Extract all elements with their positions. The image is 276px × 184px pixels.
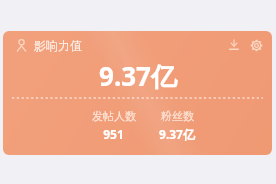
staticText: 影响力值 xyxy=(34,38,82,53)
button[interactable]: Settings xyxy=(247,36,265,54)
button[interactable]: 粉丝数 xyxy=(150,109,204,142)
button[interactable]: 发帖人数 xyxy=(87,109,140,142)
button[interactable]: 影响力值 xyxy=(14,38,82,53)
button[interactable]: Download xyxy=(225,36,243,54)
staticText: 粉丝数 xyxy=(161,109,194,123)
staticText: 发帖人数 xyxy=(92,109,136,123)
staticText: 9.37亿 xyxy=(159,126,195,142)
staticText: 9.37亿 xyxy=(99,58,177,94)
staticText: 951 xyxy=(103,126,124,142)
